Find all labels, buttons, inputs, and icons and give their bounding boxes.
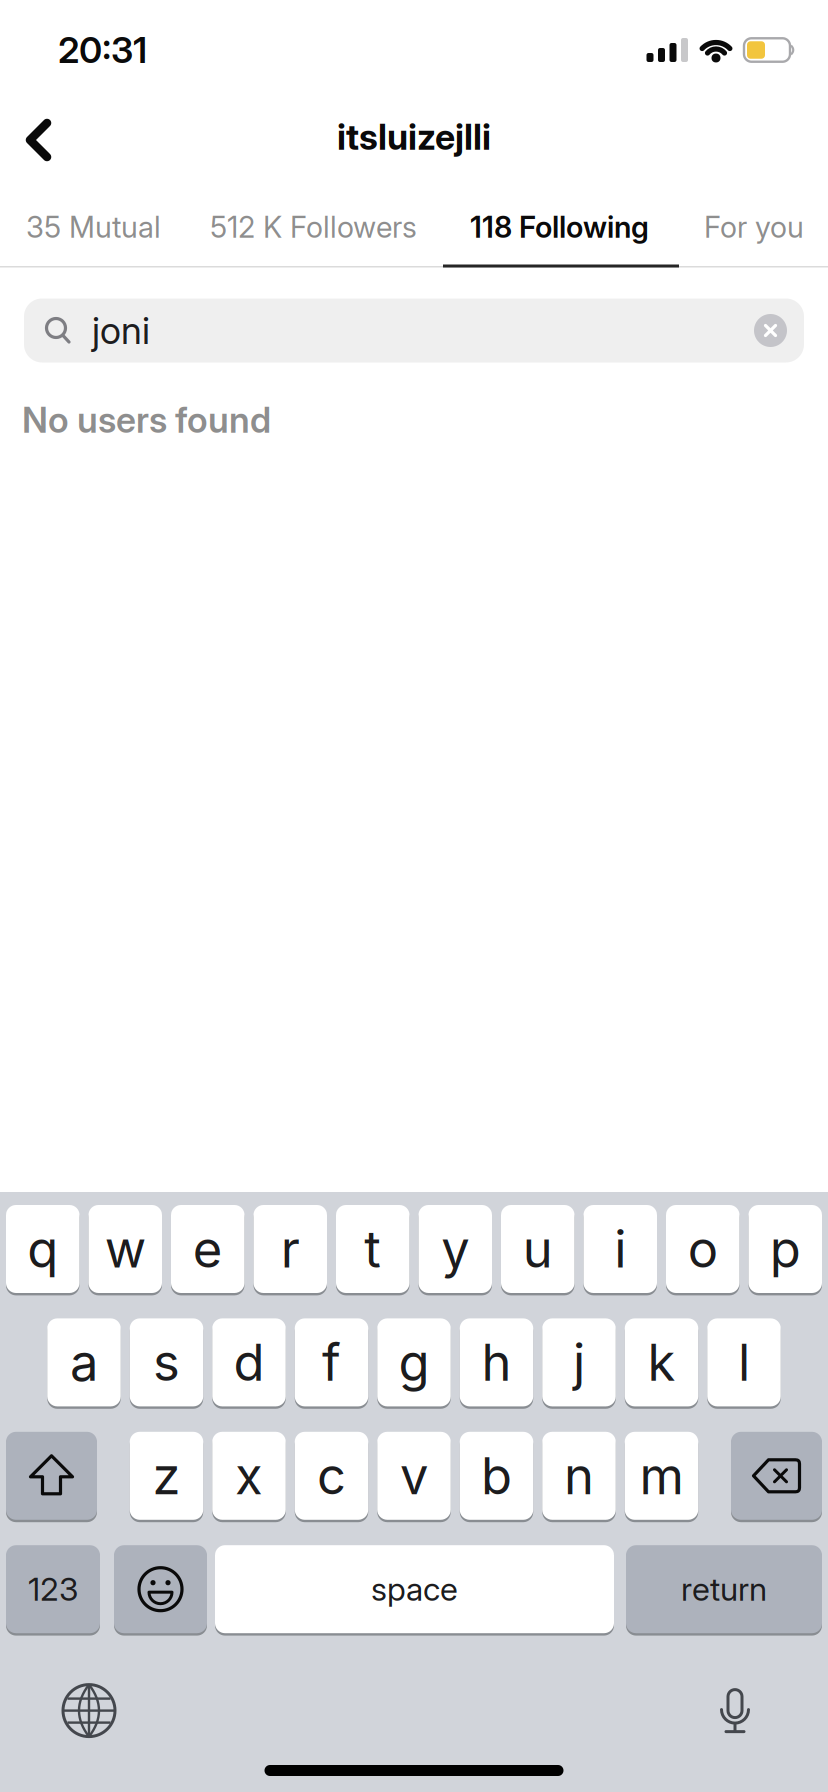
- staticText: y: [441, 1218, 469, 1280]
- staticText: l: [738, 1332, 750, 1393]
- button[interactable]: return: [626, 1545, 822, 1636]
- button[interactable]: r: [253, 1205, 327, 1295]
- button[interactable]: c: [295, 1432, 368, 1522]
- button[interactable]: l: [707, 1318, 781, 1409]
- button[interactable]: Clear search text: [754, 314, 804, 347]
- staticText: joni: [92, 308, 150, 353]
- button[interactable]: k: [625, 1318, 698, 1409]
- button[interactable]: 118 Following: [470, 209, 704, 245]
- staticText: k: [647, 1332, 675, 1393]
- button[interactable]: space: [215, 1545, 614, 1636]
- button[interactable]: z: [130, 1432, 203, 1522]
- staticText: n: [564, 1445, 594, 1506]
- button[interactable]: a: [47, 1318, 121, 1409]
- staticText: f: [322, 1332, 341, 1393]
- staticText: m: [639, 1445, 683, 1506]
- button[interactable]: i: [583, 1205, 657, 1295]
- button[interactable]: n: [542, 1432, 616, 1522]
- button[interactable]: Numbers: [6, 1545, 100, 1636]
- button[interactable]: s: [130, 1318, 203, 1409]
- button[interactable]: g: [377, 1318, 451, 1409]
- button[interactable]: q: [6, 1205, 79, 1295]
- button[interactable]: y: [418, 1205, 492, 1295]
- button[interactable]: Emoji: [114, 1545, 207, 1636]
- staticText: z: [152, 1445, 180, 1506]
- button[interactable]: t: [336, 1205, 409, 1295]
- button[interactable]: m: [625, 1432, 698, 1522]
- button[interactable]: For you: [704, 209, 804, 245]
- staticText: r: [281, 1218, 300, 1280]
- staticText: q: [27, 1218, 58, 1280]
- staticText: itsluizejlli: [337, 116, 491, 158]
- button[interactable]: e: [171, 1205, 244, 1295]
- staticText: 20:31: [58, 28, 147, 72]
- staticText: 118 Following: [470, 209, 649, 245]
- button[interactable]: 512 K Followers: [210, 209, 470, 245]
- staticText: d: [233, 1332, 264, 1393]
- button[interactable]: d: [212, 1318, 286, 1409]
- staticText: b: [481, 1445, 512, 1506]
- button[interactable]: u: [501, 1205, 574, 1295]
- button[interactable]: 35 Mutual: [26, 209, 210, 245]
- button[interactable]: x: [212, 1432, 286, 1522]
- staticText: u: [523, 1218, 553, 1280]
- staticText: return: [681, 1570, 767, 1608]
- staticText: g: [398, 1332, 429, 1393]
- button[interactable]: Back: [0, 120, 72, 160]
- staticText: 35 Mutual: [26, 209, 161, 245]
- button[interactable]: Delete: [731, 1432, 822, 1522]
- button[interactable]: j: [542, 1318, 616, 1409]
- staticText: p: [770, 1218, 801, 1280]
- staticText: j: [573, 1332, 585, 1393]
- button[interactable]: p: [748, 1205, 822, 1295]
- button[interactable]: h: [460, 1318, 533, 1409]
- staticText: v: [400, 1445, 428, 1506]
- staticText: w: [105, 1218, 146, 1280]
- staticText: s: [153, 1332, 180, 1393]
- button[interactable]: Dictation: [716, 1687, 828, 1735]
- button[interactable]: Next keyboard: [0, 1683, 117, 1739]
- staticText: 512 K Followers: [210, 209, 417, 245]
- staticText: t: [364, 1218, 381, 1280]
- staticText: a: [70, 1332, 98, 1393]
- staticText: c: [317, 1445, 346, 1506]
- staticText: o: [688, 1218, 718, 1280]
- button[interactable]: b: [460, 1432, 533, 1522]
- staticText: e: [193, 1218, 223, 1280]
- staticText: No users found: [22, 398, 271, 441]
- button[interactable]: v: [377, 1432, 451, 1522]
- staticText: 123: [28, 1570, 78, 1608]
- staticText: For you: [704, 209, 804, 245]
- button[interactable]: o: [666, 1205, 739, 1295]
- staticText: x: [235, 1445, 263, 1506]
- staticText: h: [481, 1332, 511, 1393]
- button[interactable]: f: [295, 1318, 368, 1409]
- staticText: i: [614, 1218, 626, 1280]
- button[interactable]: w: [88, 1205, 162, 1295]
- button[interactable]: Shift: [6, 1432, 97, 1522]
- staticText: space: [371, 1570, 458, 1608]
